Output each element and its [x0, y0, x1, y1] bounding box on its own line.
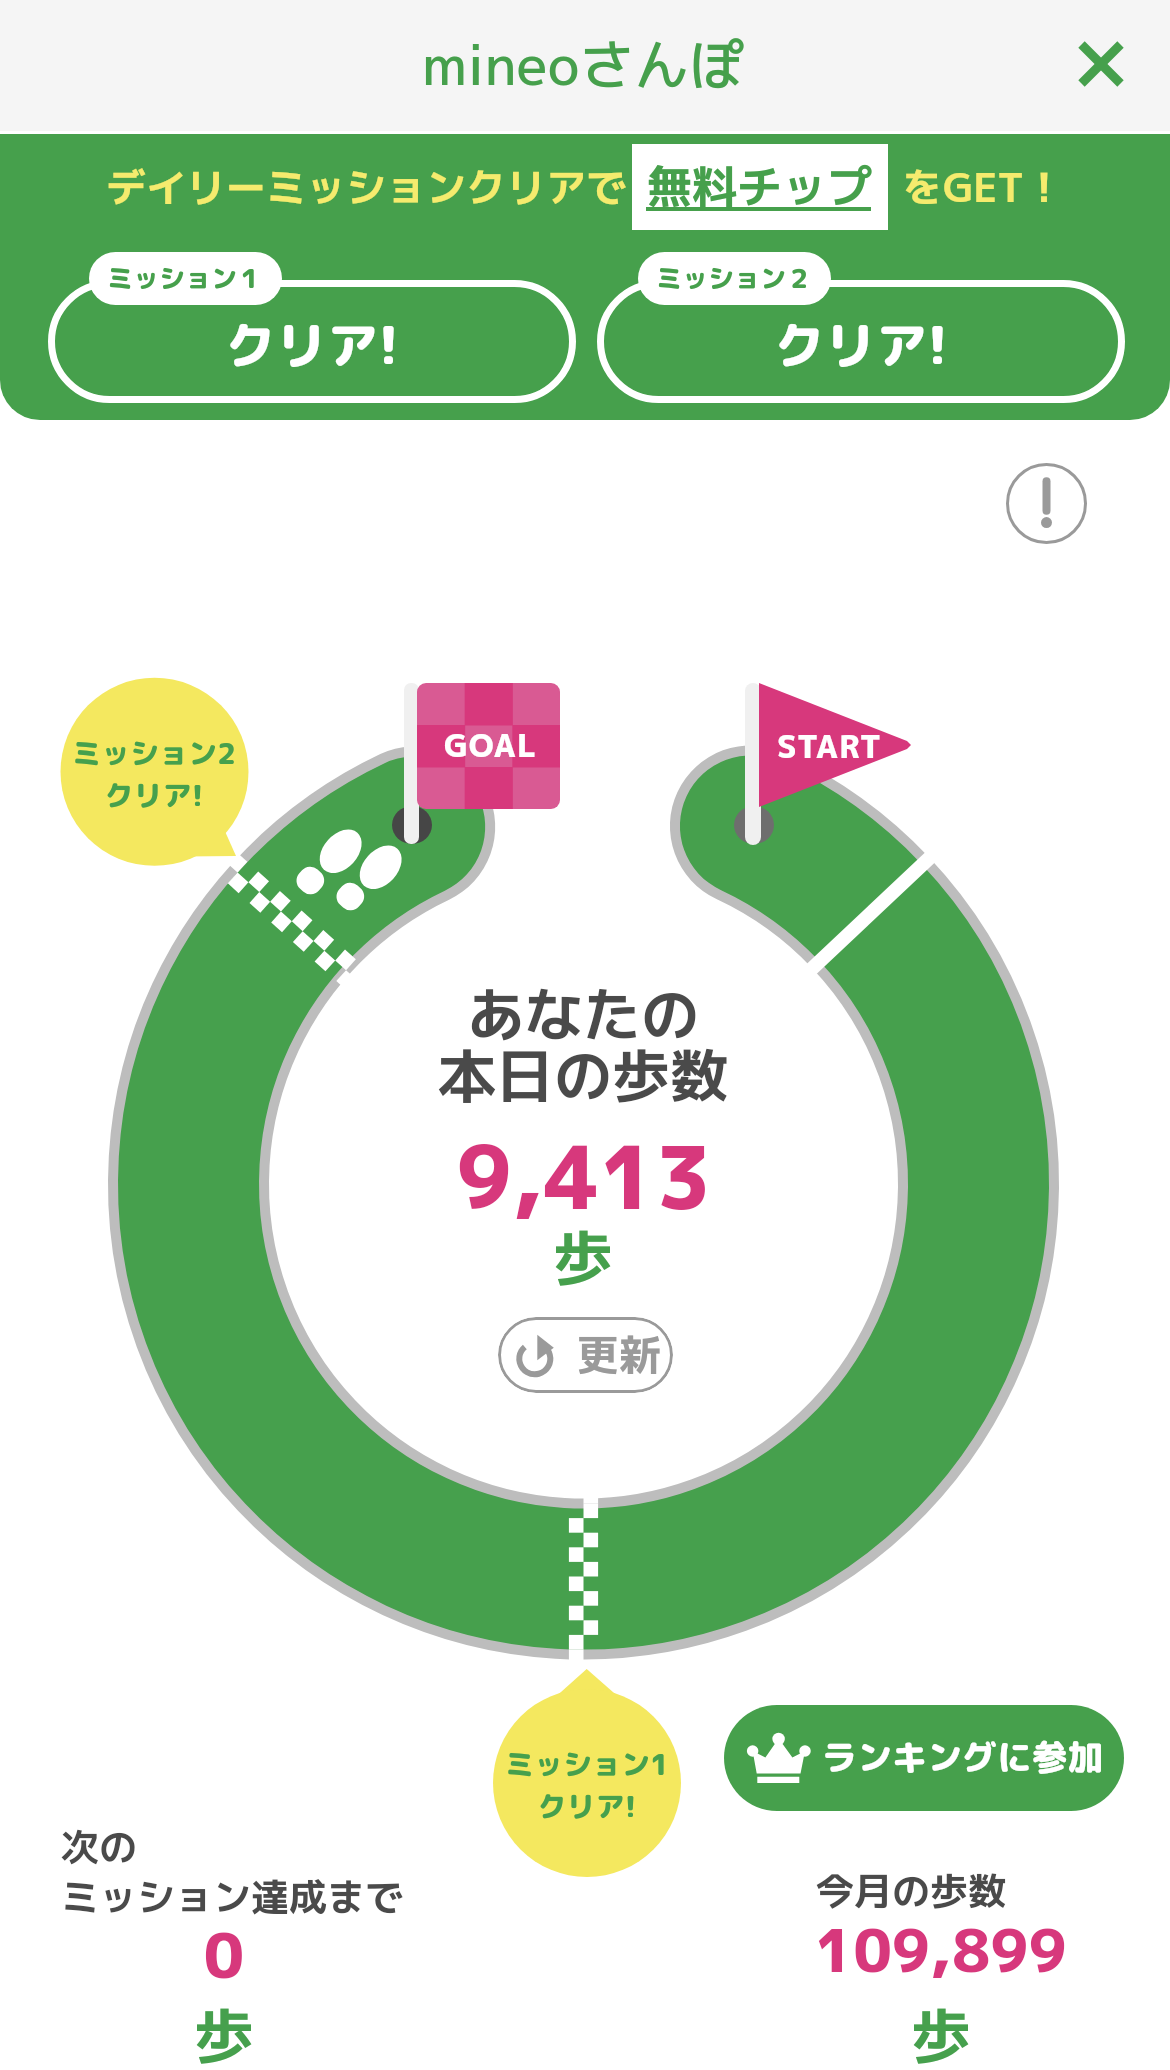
staticText: ミッション2 クリア! [59, 733, 249, 815]
staticText: クリア! [774, 309, 948, 380]
staticText: 更新 [577, 1325, 662, 1384]
staticText: 歩 [61, 1993, 387, 2070]
staticText: 歩 [0, 1215, 1168, 1299]
button[interactable]: 更新 [498, 1317, 673, 1393]
button[interactable]: Close [1063, 26, 1139, 102]
staticText: ミッション１ [107, 260, 264, 296]
staticText: START [777, 725, 882, 768]
staticText: 無料チップ [647, 155, 873, 218]
staticText: GOAL [444, 724, 538, 767]
staticText: mineoさんぽ [422, 26, 745, 103]
staticText: あなたの 本日の歩数 [0, 974, 1168, 1116]
staticText: 0 [61, 1911, 387, 1997]
staticText: デイリーミッションクリアで [106, 159, 626, 215]
staticText: 今月の歩数 [727, 1864, 1095, 1917]
button[interactable]: Information [1006, 463, 1087, 544]
button[interactable]: ランキングに参加 [724, 1705, 1124, 1811]
staticText: ミッション1 クリア! [492, 1744, 682, 1826]
staticText: ランキングに参加 [822, 1732, 1103, 1781]
button[interactable]: クリア! [597, 280, 1125, 403]
button[interactable]: クリア! [48, 280, 576, 403]
staticText: 9,413 [0, 1117, 1169, 1237]
staticText: 次の ミッション達成まで [61, 1820, 404, 1923]
staticText: 歩 [757, 1993, 1125, 2070]
staticText: 109,899 [757, 1909, 1125, 1991]
staticText: クリア! [225, 309, 399, 380]
staticText: ミッション２ [656, 260, 813, 296]
staticText: をGET！ [903, 159, 1064, 215]
